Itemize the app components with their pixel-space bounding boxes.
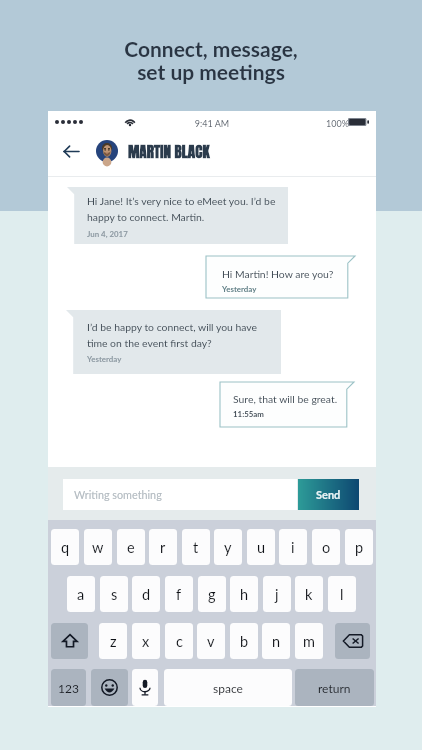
button[interactable]: Writing something	[63, 479, 297, 510]
staticText: t	[193, 539, 199, 556]
button[interactable]: u	[247, 529, 275, 565]
button[interactable]: v	[197, 623, 225, 659]
staticText: b	[240, 633, 249, 650]
button[interactable]: e	[117, 529, 145, 565]
staticText: Yesterday	[222, 284, 257, 293]
button[interactable]: Martin Black profile photo	[96, 140, 118, 162]
staticText: c	[176, 633, 183, 650]
button[interactable]: z	[99, 623, 127, 659]
button[interactable]: h	[230, 576, 258, 612]
staticText: return	[318, 681, 351, 695]
button[interactable]: p	[345, 529, 373, 565]
button[interactable]: Shift	[51, 623, 88, 659]
button[interactable]: y	[214, 529, 242, 565]
staticText: l	[340, 586, 344, 603]
staticText: 100%	[326, 118, 349, 129]
staticText: I’d be happy to connect, will you have t…	[87, 321, 258, 349]
button[interactable]: s	[100, 576, 128, 612]
button[interactable]: x	[132, 623, 160, 659]
staticText: p	[355, 539, 364, 556]
staticText: e	[127, 539, 135, 556]
button[interactable]: space	[164, 669, 292, 706]
staticText: m	[303, 633, 315, 650]
staticText: Hi Martin! How are you?	[222, 268, 334, 280]
button[interactable]: return	[295, 669, 374, 706]
staticText: h	[240, 586, 249, 603]
button[interactable]: Voice input	[132, 669, 158, 706]
staticText: 11:55am	[233, 409, 264, 418]
staticText: f	[176, 586, 182, 603]
staticText: g	[208, 586, 216, 603]
staticText: 123	[58, 681, 79, 695]
staticText: v	[207, 633, 215, 650]
button[interactable]: Hi Martin! How are you?	[206, 256, 355, 298]
staticText: q	[61, 539, 70, 556]
button[interactable]: n	[262, 623, 290, 659]
staticText: r	[160, 539, 166, 556]
button[interactable]: Backspace	[335, 623, 370, 659]
button[interactable]: a	[67, 576, 95, 612]
staticText: Connect, message, set up meetings	[0, 36, 422, 85]
staticText: i	[291, 539, 295, 556]
button[interactable]: l	[328, 576, 356, 612]
staticText: Writing something	[74, 488, 162, 501]
button[interactable]: o	[312, 529, 340, 565]
staticText: z	[110, 633, 117, 650]
button[interactable]: Send	[298, 479, 359, 510]
staticText: n	[272, 633, 281, 650]
staticText: Sure, that will be great.	[233, 393, 338, 405]
staticText: 9:41 AM	[172, 118, 252, 129]
button[interactable]: k	[295, 576, 323, 612]
button[interactable]: MARTIN BLACK	[128, 140, 210, 163]
button[interactable]: q	[51, 529, 79, 565]
button[interactable]: i	[279, 529, 307, 565]
staticText: w	[92, 539, 104, 556]
button[interactable]: w	[84, 529, 112, 565]
staticText: x	[142, 633, 150, 650]
button[interactable]: m	[295, 623, 323, 659]
staticText: k	[305, 586, 313, 603]
button[interactable]: Sure, that will be great.	[220, 382, 354, 427]
button[interactable]: j	[263, 576, 291, 612]
staticText: Send	[316, 488, 341, 501]
staticText: j	[275, 586, 279, 603]
staticText: Yesterday	[87, 354, 122, 363]
staticText: u	[257, 539, 266, 556]
staticText: space	[213, 681, 243, 695]
button[interactable]: c	[165, 623, 193, 659]
button[interactable]: Emoji	[91, 669, 128, 706]
button[interactable]: I’d be happy to connect, will you have t…	[66, 310, 281, 374]
button[interactable]: Back	[56, 138, 86, 164]
button[interactable]: g	[198, 576, 226, 612]
button[interactable]: r	[149, 529, 177, 565]
staticText: Hi Jane! It’s very nice to eMeet you. I’…	[87, 195, 276, 223]
button[interactable]: t	[182, 529, 210, 565]
staticText: a	[77, 586, 85, 603]
staticText: Jun 4, 2017	[87, 229, 128, 238]
staticText: y	[224, 539, 232, 556]
button[interactable]: 123	[51, 669, 86, 706]
button[interactable]: f	[165, 576, 193, 612]
button[interactable]: b	[230, 623, 258, 659]
staticText: s	[111, 586, 118, 603]
button[interactable]: Hi Jane! It’s very nice to eMeet you. I’…	[67, 187, 288, 244]
staticText: o	[322, 539, 331, 556]
staticText: d	[142, 586, 151, 603]
button[interactable]: d	[132, 576, 160, 612]
